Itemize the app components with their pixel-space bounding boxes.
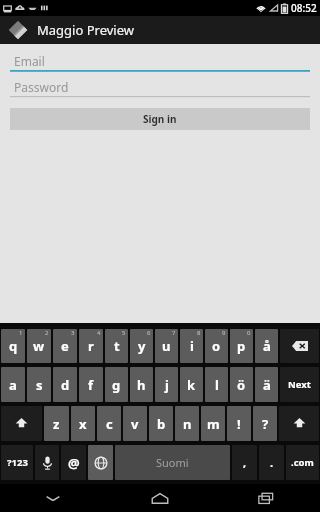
button[interactable]: a (1, 367, 25, 402)
button[interactable]: . (259, 445, 284, 480)
staticText: c (106, 415, 113, 433)
button[interactable]: ? (253, 406, 277, 441)
button[interactable]: Password (10, 78, 310, 98)
staticText: Password (14, 79, 69, 95)
staticText: ?123 (7, 456, 28, 469)
staticText: @ (68, 454, 80, 472)
button[interactable]: Voice input (35, 445, 59, 480)
staticText: .com (291, 456, 314, 469)
staticText: 8 (197, 329, 201, 337)
button[interactable]: @ (61, 445, 86, 480)
button[interactable]: ! (227, 406, 251, 441)
staticText: h (137, 376, 146, 394)
staticText: w (33, 337, 45, 355)
staticText: Next (288, 378, 311, 391)
staticText: 6 (147, 329, 151, 337)
staticText: f (88, 376, 94, 394)
staticText: 1 (19, 329, 23, 337)
button[interactable]: Email (10, 52, 310, 72)
button[interactable]: c (97, 406, 121, 441)
button[interactable]: j (155, 367, 178, 402)
staticText: 9 (222, 329, 226, 337)
staticText: e (61, 337, 69, 355)
staticText: å (263, 337, 271, 355)
staticText: s (36, 376, 43, 394)
button[interactable]: Recent apps (213, 484, 320, 512)
button[interactable]: Backspace (280, 329, 319, 363)
button[interactable]: e (53, 329, 77, 363)
button[interactable]: t (105, 329, 128, 363)
button[interactable]: r (79, 329, 103, 363)
button[interactable]: o (205, 329, 228, 363)
button[interactable]: Suomi (115, 445, 230, 480)
button[interactable]: k (180, 367, 203, 402)
staticText: Sign in (143, 112, 177, 126)
staticText: ä (263, 376, 271, 394)
button[interactable]: , (232, 445, 257, 480)
button[interactable]: m (201, 406, 225, 441)
staticText: 5 (122, 329, 126, 337)
staticText: u (162, 337, 171, 355)
staticText: . (270, 455, 274, 470)
staticText: g (112, 376, 121, 394)
staticText: ? (262, 415, 269, 433)
staticText: t (114, 337, 120, 355)
button[interactable]: y (130, 329, 153, 363)
button[interactable]: ö (230, 367, 253, 402)
staticText: Email (14, 53, 45, 69)
staticText: n (183, 415, 192, 433)
button[interactable]: n (175, 406, 199, 441)
button[interactable]: Shift (1, 406, 42, 441)
staticText: p (237, 337, 246, 355)
button[interactable]: b (149, 406, 173, 441)
button[interactable]: h (130, 367, 153, 402)
button[interactable]: Home (106, 484, 213, 512)
staticText: y (138, 337, 146, 355)
button[interactable]: å (255, 329, 278, 363)
staticText: o (212, 337, 221, 355)
staticText: i (190, 337, 194, 355)
staticText: ! (237, 415, 241, 433)
staticText: 0 (247, 329, 251, 337)
staticText: z (53, 415, 60, 433)
staticText: m (207, 415, 220, 433)
button[interactable]: d (53, 367, 77, 402)
staticText: a (9, 376, 17, 394)
button[interactable]: s (27, 367, 51, 402)
button[interactable]: Shift (279, 406, 319, 441)
staticText: d (61, 376, 70, 394)
button[interactable]: Hide keyboard (0, 484, 106, 512)
staticText: 4 (97, 329, 101, 337)
button[interactable]: u (155, 329, 178, 363)
button[interactable]: l (205, 367, 228, 402)
button[interactable]: ?123 (1, 445, 33, 480)
button[interactable]: q (1, 329, 25, 363)
button[interactable]: w (27, 329, 51, 363)
staticText: k (187, 376, 196, 394)
button[interactable]: .com (286, 445, 319, 480)
button[interactable]: App icon (6, 18, 30, 42)
button[interactable]: Sign in (10, 108, 310, 130)
button[interactable]: f (79, 367, 103, 402)
button[interactable]: Next (280, 367, 319, 402)
staticText: r (88, 337, 94, 355)
button[interactable]: ä (255, 367, 278, 402)
button[interactable]: i (180, 329, 203, 363)
staticText: , (243, 455, 247, 470)
staticText: 08:52 (291, 1, 317, 15)
staticText: ö (237, 376, 246, 394)
staticText: q (9, 337, 18, 355)
button[interactable]: v (123, 406, 147, 441)
button[interactable]: x (71, 406, 95, 441)
button[interactable]: Change language (88, 445, 113, 480)
staticText: v (131, 415, 139, 433)
staticText: b (157, 415, 166, 433)
staticText: l (215, 376, 219, 394)
button[interactable]: p (230, 329, 253, 363)
staticText: Suomi (156, 455, 189, 470)
staticText: Maggio Preview (37, 21, 134, 39)
button[interactable]: g (105, 367, 128, 402)
button[interactable]: z (44, 406, 69, 441)
staticText: 3 (71, 329, 75, 337)
staticText: x (79, 415, 87, 433)
